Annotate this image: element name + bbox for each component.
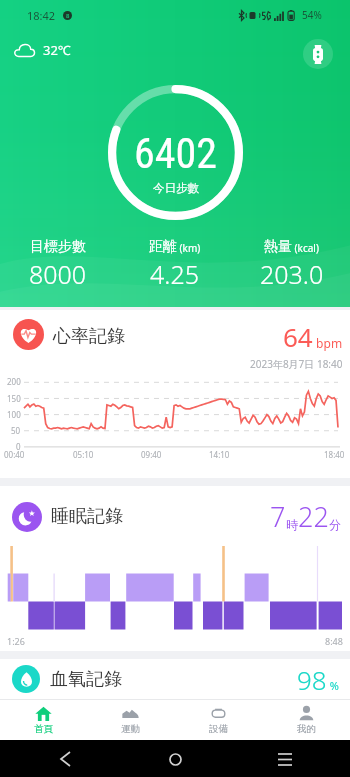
- staticText: 14:10: [209, 449, 230, 460]
- staticText: bpm: [313, 335, 343, 351]
- staticText: %: [327, 678, 340, 693]
- button[interactable]: Back: [52, 746, 78, 772]
- button[interactable]: 首頁: [0, 700, 87, 740]
- button[interactable]: Recent apps: [272, 746, 298, 772]
- button[interactable]: Home: [162, 746, 188, 772]
- staticText: 6402: [134, 129, 217, 178]
- button[interactable]: 距離: [116, 238, 233, 291]
- staticText: 32℃: [43, 41, 71, 59]
- staticText: 8: [66, 12, 70, 20]
- staticText: 1:26: [7, 635, 25, 647]
- staticText: 心率記錄: [53, 325, 125, 348]
- staticText: 熱量: [264, 238, 292, 256]
- staticText: 54%: [302, 8, 322, 22]
- staticText: 00:40: [4, 449, 25, 460]
- staticText: 18:42: [27, 8, 56, 23]
- staticText: 05:10: [73, 449, 94, 460]
- staticText: 18:40: [324, 449, 345, 460]
- staticText: 距離: [149, 238, 177, 256]
- staticText: 睡眠記錄: [51, 505, 123, 528]
- staticText: 7: [270, 498, 286, 535]
- staticText: 64: [283, 319, 313, 354]
- button[interactable]: 我的: [262, 700, 350, 740]
- button[interactable]: 設備: [174, 700, 262, 740]
- staticText: 我的: [297, 723, 316, 735]
- staticText: 22: [298, 498, 329, 535]
- staticText: 0: [16, 441, 21, 452]
- staticText: 100: [7, 409, 21, 420]
- staticText: 首頁: [34, 723, 53, 735]
- staticText: 時: [286, 517, 298, 532]
- staticText: 98: [297, 662, 327, 697]
- button[interactable]: My device: [303, 39, 333, 69]
- staticText: 150: [7, 393, 21, 404]
- staticText: 8000: [29, 257, 87, 291]
- staticText: 目標步數: [30, 238, 86, 256]
- staticText: 設備: [209, 723, 228, 735]
- staticText: 50: [11, 425, 21, 436]
- staticText: 今日步數: [153, 181, 199, 195]
- button[interactable]: 血氧記錄: [0, 659, 350, 699]
- staticText: 分: [329, 517, 341, 532]
- staticText: (kcal): [292, 241, 319, 255]
- button[interactable]: 熱量: [233, 238, 350, 291]
- staticText: 血氧記錄: [50, 668, 122, 691]
- staticText: 8:48: [325, 635, 343, 647]
- button[interactable]: 運動: [87, 700, 174, 740]
- button[interactable]: 目標步數: [0, 238, 116, 291]
- button[interactable]: 睡眠記錄: [0, 486, 350, 651]
- staticText: 4.25: [150, 257, 199, 291]
- staticText: 2023年8月7日 18:40: [250, 357, 343, 371]
- button[interactable]: 心率記錄: [0, 310, 350, 478]
- staticText: 200: [7, 376, 21, 387]
- staticText: 運動: [121, 723, 140, 735]
- staticText: 203.0: [260, 257, 324, 291]
- staticText: (km): [177, 241, 201, 255]
- staticText: 09:40: [141, 449, 162, 460]
